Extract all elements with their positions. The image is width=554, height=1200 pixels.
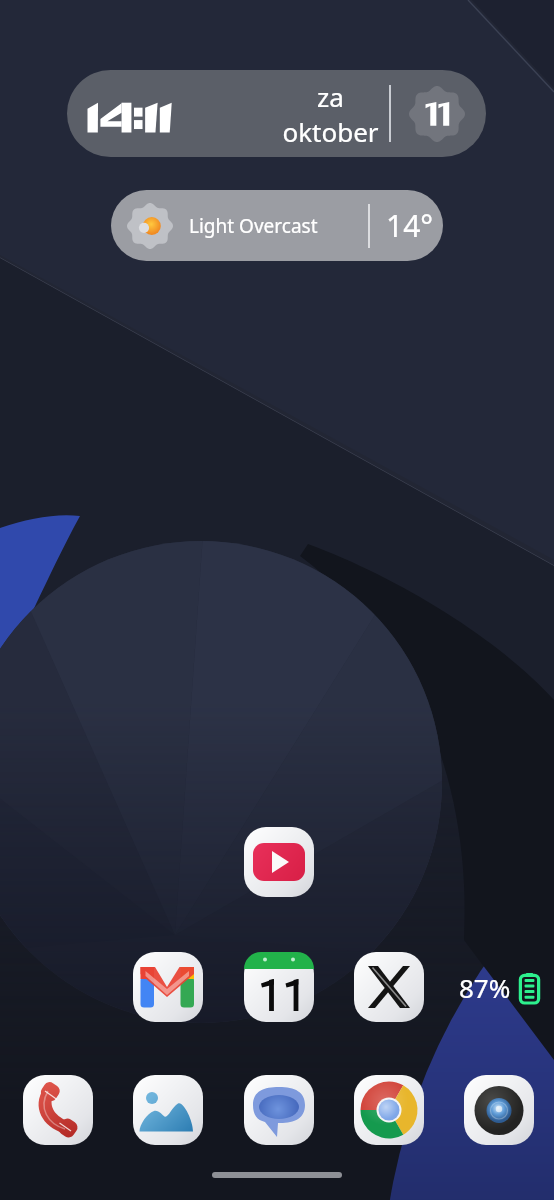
button[interactable]: 87% [459,970,539,1005]
button[interactable]: Calendar [244,952,314,1022]
staticText: oktober [282,114,379,149]
staticText: za [317,79,344,114]
button[interactable]: X [354,952,424,1022]
button[interactable]: Gmail [133,952,203,1022]
button[interactable]: Light Overcast [111,190,443,261]
staticText: Light Overcast [189,213,318,239]
staticText: 87% [459,970,511,1005]
button[interactable]: Phone [23,1075,93,1145]
button[interactable]: YouTube [244,827,314,897]
button[interactable]: Chrome [354,1075,424,1145]
button[interactable]: Messages [244,1075,314,1145]
button[interactable]: Camera [464,1075,534,1145]
staticText: 14° [386,205,434,246]
button[interactable]: za [67,70,486,157]
button[interactable]: Photos [133,1075,203,1145]
